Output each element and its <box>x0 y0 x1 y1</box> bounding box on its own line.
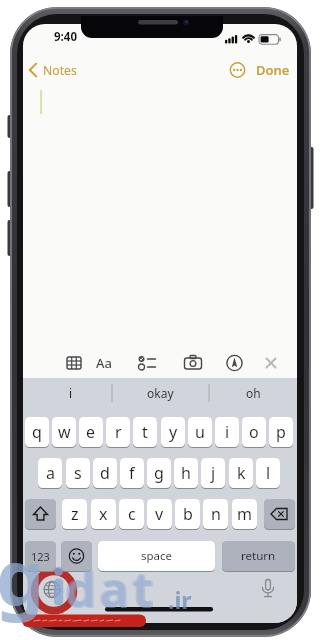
staticText: g <box>154 462 164 484</box>
button[interactable] <box>227 60 248 81</box>
button[interactable]: space <box>98 541 215 571</box>
button[interactable] <box>181 352 205 374</box>
button[interactable]: g <box>147 458 171 488</box>
staticText: 9:40 <box>54 29 77 45</box>
staticText: h <box>181 462 191 484</box>
button[interactable]: x <box>91 499 116 529</box>
staticText: space <box>141 548 173 564</box>
staticText: 123 <box>31 549 50 564</box>
staticText: a <box>46 462 55 484</box>
button[interactable]: j <box>201 458 225 488</box>
staticText: w <box>58 421 71 443</box>
button[interactable]: oh <box>209 378 297 408</box>
button[interactable]: i <box>28 378 114 408</box>
staticText: i <box>225 421 230 443</box>
staticText: v <box>155 503 164 525</box>
staticText: b <box>183 503 193 525</box>
button[interactable]: y <box>161 417 185 447</box>
staticText: oh <box>246 385 261 401</box>
staticText: i <box>69 385 73 401</box>
button[interactable]: e <box>79 417 103 447</box>
staticText: okay <box>147 385 174 401</box>
button[interactable] <box>40 578 64 602</box>
button[interactable]: r <box>106 417 130 447</box>
button[interactable]: s <box>66 458 90 488</box>
button[interactable]: Aa <box>90 352 118 374</box>
button[interactable]: q <box>25 417 49 447</box>
staticText: c <box>128 503 136 525</box>
staticText: u <box>195 421 205 443</box>
button[interactable]: Done <box>250 59 295 81</box>
button[interactable] <box>25 499 56 529</box>
button[interactable]: m <box>232 499 257 529</box>
button[interactable] <box>63 352 86 374</box>
button[interactable]: Notes <box>41 60 79 80</box>
button[interactable] <box>260 352 282 374</box>
staticText: m <box>237 503 252 525</box>
button[interactable]: i <box>215 417 239 447</box>
button[interactable]: h <box>174 458 198 488</box>
button[interactable]: p <box>269 417 293 447</box>
button[interactable]: a <box>38 458 62 488</box>
staticText: k <box>237 462 246 484</box>
staticText: p <box>276 421 286 443</box>
button[interactable]: return <box>222 541 295 571</box>
button[interactable]: c <box>119 499 144 529</box>
button[interactable]: t <box>133 417 157 447</box>
button[interactable]: u <box>188 417 212 447</box>
button[interactable]: k <box>229 458 253 488</box>
button[interactable]: v <box>147 499 172 529</box>
button[interactable]: l <box>256 458 280 488</box>
staticText: Done <box>256 61 290 79</box>
staticText: z <box>71 503 79 525</box>
staticText: q <box>32 421 42 443</box>
staticText: s <box>74 462 82 484</box>
staticText: .ir <box>168 584 192 615</box>
staticText: j <box>211 462 216 484</box>
staticText: f <box>129 462 135 484</box>
button[interactable]: b <box>175 499 200 529</box>
button[interactable] <box>61 541 92 571</box>
button[interactable] <box>256 578 280 602</box>
staticText: r <box>115 421 122 443</box>
staticText: y <box>169 421 178 443</box>
staticText: g <box>0 524 45 628</box>
button[interactable]: n <box>203 499 228 529</box>
button[interactable]: z <box>62 499 87 529</box>
staticText: return <box>241 548 276 564</box>
button[interactable]: w <box>52 417 76 447</box>
button[interactable]: 123 <box>25 541 56 571</box>
staticText: e <box>86 421 96 443</box>
staticText: x <box>99 503 108 525</box>
staticText: Aa <box>96 354 112 372</box>
button[interactable]: okay <box>112 378 209 408</box>
button[interactable] <box>264 499 295 529</box>
staticText: n <box>211 503 221 525</box>
button[interactable]: d <box>93 458 117 488</box>
staticText: o <box>249 421 259 443</box>
staticText: d <box>100 462 110 484</box>
button[interactable] <box>135 352 159 374</box>
button[interactable]: o <box>242 417 266 447</box>
staticText: Notes <box>43 62 77 79</box>
button[interactable] <box>223 352 246 374</box>
staticText: t <box>142 421 148 443</box>
staticText: dat <box>66 556 159 623</box>
staticText: l <box>266 462 271 484</box>
staticText: dat <box>64 555 157 622</box>
button[interactable] <box>25 58 41 82</box>
button[interactable]: f <box>120 458 144 488</box>
